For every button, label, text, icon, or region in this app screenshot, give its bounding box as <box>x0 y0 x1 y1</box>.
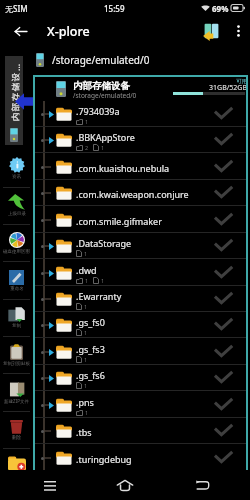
button[interactable]: Back <box>184 470 220 500</box>
button[interactable]: Recent apps <box>32 470 68 500</box>
staticText: .dwd <box>76 264 97 276</box>
button[interactable]: .pns <box>33 392 248 418</box>
staticText: 设 <box>9 72 19 81</box>
staticText: .gs_fs3 <box>76 343 105 355</box>
button[interactable]: .gs_fs3 <box>33 339 248 365</box>
staticText: 15:59 <box>104 3 125 14</box>
staticText: 内部存储设备 <box>73 80 130 92</box>
staticText: 1 <box>101 277 105 284</box>
staticText: 1 <box>84 303 88 310</box>
staticText: 无SIM <box>5 3 28 14</box>
button[interactable]: .com.kuaishou.nebula <box>33 154 248 180</box>
button[interactable]: .gs_fs6 <box>33 365 248 391</box>
staticText: 1 <box>84 356 88 363</box>
staticText: .7934039a <box>76 105 120 117</box>
staticText: .gs_fs6 <box>76 369 105 381</box>
button[interactable]: 重命名 <box>0 262 33 299</box>
staticText: 新建ZIP文件 <box>4 398 29 404</box>
button[interactable]: 复制到剪贴板 <box>0 337 33 374</box>
button[interactable]: More options <box>226 19 250 43</box>
button[interactable]: 资讯 <box>0 150 33 187</box>
button[interactable]: Home <box>107 470 143 500</box>
button[interactable]: .7934039a <box>33 101 248 127</box>
staticText: 复制到剪贴板 <box>3 361 30 367</box>
staticText: … <box>10 63 20 71</box>
staticText: 上级目录 <box>8 211 26 217</box>
staticText: 存 <box>9 92 19 101</box>
button[interactable]: 删除 <box>0 411 33 448</box>
button[interactable]: /storage/emulated/0 <box>33 46 250 74</box>
staticText: .tbs <box>76 426 92 438</box>
button[interactable]: 上级目录 <box>0 187 33 224</box>
staticText: 可用 <box>223 78 247 85</box>
button[interactable]: .com.kwai.weapon.conjure <box>33 180 248 206</box>
staticText: 删除 <box>12 435 21 441</box>
staticText: 重命名 <box>10 286 24 292</box>
staticText: .Ewarranty <box>76 290 122 302</box>
button[interactable]: .tbs <box>33 418 248 444</box>
button[interactable]: .BBKAppStore <box>33 127 248 153</box>
button[interactable]: 复制 <box>0 299 33 336</box>
staticText: /storage/emulated/0 <box>73 91 137 100</box>
staticText: 1 <box>84 250 88 257</box>
staticText: .com.smile.gifmaker <box>76 215 162 227</box>
button[interactable]: 磁盘使用区图 <box>0 225 33 262</box>
button[interactable]: .Ewarranty <box>33 286 248 312</box>
staticText: 资讯 <box>12 174 21 180</box>
staticText: 内 <box>9 112 19 121</box>
button[interactable]: Back <box>6 17 34 45</box>
staticText: .com.kuaishou.nebula <box>76 162 170 174</box>
button[interactable]: … <box>5 56 23 145</box>
staticText: 复制 <box>12 323 21 329</box>
staticText: 1 <box>101 144 105 151</box>
staticText: /storage/emulated/0 <box>52 53 150 67</box>
staticText: 1 <box>84 329 88 336</box>
button[interactable]: .dwd <box>33 260 248 286</box>
staticText: 69% <box>212 3 229 14</box>
staticText: 2 <box>85 144 89 151</box>
staticText: 31GB/52GB <box>197 83 247 93</box>
button[interactable]: .gs_fs0 <box>33 312 248 338</box>
staticText: 磁盘使用区图 <box>3 249 30 255</box>
button[interactable]: X-plore <box>47 23 90 40</box>
staticText: .turingdebug <box>76 453 132 465</box>
button[interactable]: .turingdebug <box>33 445 248 471</box>
staticText: 1 <box>85 277 89 284</box>
staticText: .gs_fs0 <box>76 316 105 328</box>
staticText: 1 <box>85 118 89 125</box>
button[interactable]: .com.smile.gifmaker <box>33 207 248 233</box>
staticText: 部 <box>9 102 19 111</box>
button[interactable]: 新建文件夹 <box>0 448 33 485</box>
button[interactable]: Switch panes <box>198 18 224 44</box>
button[interactable]: .DataStorage <box>33 233 248 259</box>
staticText: .BBKAppStore <box>76 131 135 143</box>
button[interactable]: 新建ZIP文件 <box>0 374 33 411</box>
staticText: .DataStorage <box>76 237 132 249</box>
staticText: 1 <box>84 382 88 389</box>
staticText: 1 <box>85 409 89 416</box>
staticText: 储 <box>9 82 19 91</box>
staticText: .com.kwai.weapon.conjure <box>76 188 189 200</box>
staticText: .pns <box>76 396 94 408</box>
button[interactable]: 内部存储设备 <box>33 76 248 101</box>
